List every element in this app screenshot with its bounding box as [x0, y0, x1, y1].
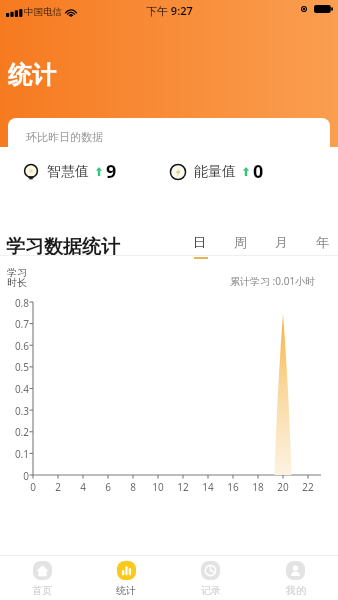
staticText: 0.4	[0, 382, 29, 396]
staticText: 10	[146, 480, 170, 494]
staticText: 学习 时长	[7, 266, 27, 289]
staticText: 累计学习 :0.01小时	[230, 274, 316, 288]
staticText: 6	[96, 480, 120, 494]
staticText: 0	[253, 159, 264, 184]
staticText: 周	[234, 234, 247, 250]
staticText: 4	[71, 480, 95, 494]
staticText: 能量值	[194, 163, 236, 181]
button[interactable]: 周	[220, 233, 261, 257]
staticText: 0.8	[0, 296, 29, 310]
button[interactable]: 统计	[84, 556, 168, 600]
staticText: 2	[46, 480, 70, 494]
staticText: 0.2	[0, 425, 29, 439]
staticText: 9	[106, 159, 117, 184]
staticText: 0.7	[0, 317, 29, 331]
staticText: 统计	[116, 584, 136, 597]
staticText: 0.1	[0, 447, 29, 461]
staticText: 12	[171, 480, 195, 494]
staticText: 0	[21, 480, 45, 494]
staticText: 首页	[32, 584, 52, 597]
staticText: 日	[193, 234, 206, 250]
staticText: 20	[271, 480, 295, 494]
button[interactable]: 我的	[253, 556, 338, 600]
staticText: 0.5	[0, 360, 29, 374]
staticText: 中国电信	[24, 6, 62, 18]
staticText: 记录	[201, 584, 221, 597]
staticText: 0.6	[0, 339, 29, 353]
button[interactable]: 年	[302, 233, 338, 257]
button[interactable]: 环比昨日的数据	[8, 118, 330, 196]
button[interactable]: 月	[261, 233, 302, 257]
staticText: 月	[275, 234, 288, 250]
button[interactable]: 首页	[0, 556, 84, 600]
staticText: 0	[0, 469, 29, 483]
staticText: 学习数据统计	[6, 235, 120, 259]
staticText: 下午 9:27	[146, 3, 193, 18]
staticText: 年	[316, 234, 329, 250]
staticText: 22	[296, 480, 320, 494]
staticText: 8	[121, 480, 145, 494]
staticText: 智慧值	[47, 163, 89, 181]
staticText: 0.3	[0, 404, 29, 418]
staticText: 14	[196, 480, 220, 494]
staticText: 我的	[286, 584, 306, 597]
button[interactable]: 日	[179, 233, 220, 257]
button[interactable]: 记录	[168, 556, 253, 600]
staticText: 18	[246, 480, 270, 494]
staticText: 统计	[8, 60, 56, 90]
staticText: 16	[221, 480, 245, 494]
staticText: 环比昨日的数据	[26, 130, 103, 144]
